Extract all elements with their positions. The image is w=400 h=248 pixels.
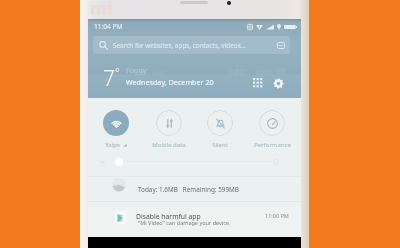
button[interactable]: Disable harmful app — [88, 202, 301, 237]
button[interactable]: Search for websites, apps, contacts, vid… — [93, 36, 290, 54]
staticText: mi — [90, 0, 113, 15]
button[interactable]: Yaips — [90, 110, 142, 149]
staticText: Disable harmful app — [136, 212, 201, 221]
button[interactable]: All apps — [249, 74, 265, 90]
button[interactable]: Performance — [246, 110, 298, 149]
staticText: ° — [115, 64, 120, 79]
staticText: Silent — [212, 141, 228, 149]
staticText: Foggy — [126, 65, 147, 75]
staticText: 11:00 PM — [265, 212, 289, 219]
staticText: Yaips — [105, 141, 120, 149]
button[interactable]: Today: 1.6MB Remaining: 599MB — [88, 177, 301, 201]
staticText: 11:04 PM — [94, 22, 123, 31]
staticText: Today: 1.6MB Remaining: 599MB — [138, 185, 239, 194]
staticText: Wednesday, December 20 — [126, 77, 214, 87]
staticText: Mobile data — [152, 141, 186, 149]
button[interactable]: Brightness — [88, 155, 301, 169]
button[interactable]: Settings — [270, 75, 286, 91]
staticText: 7 — [103, 64, 115, 88]
staticText: Performance — [254, 141, 291, 149]
staticText: Search for websites, apps, contacts, vid… — [113, 41, 277, 50]
staticText: "Mi Video" can damage your device. — [138, 219, 231, 226]
button[interactable]: Silent — [194, 110, 246, 149]
button[interactable]: Mobile data — [143, 110, 195, 149]
